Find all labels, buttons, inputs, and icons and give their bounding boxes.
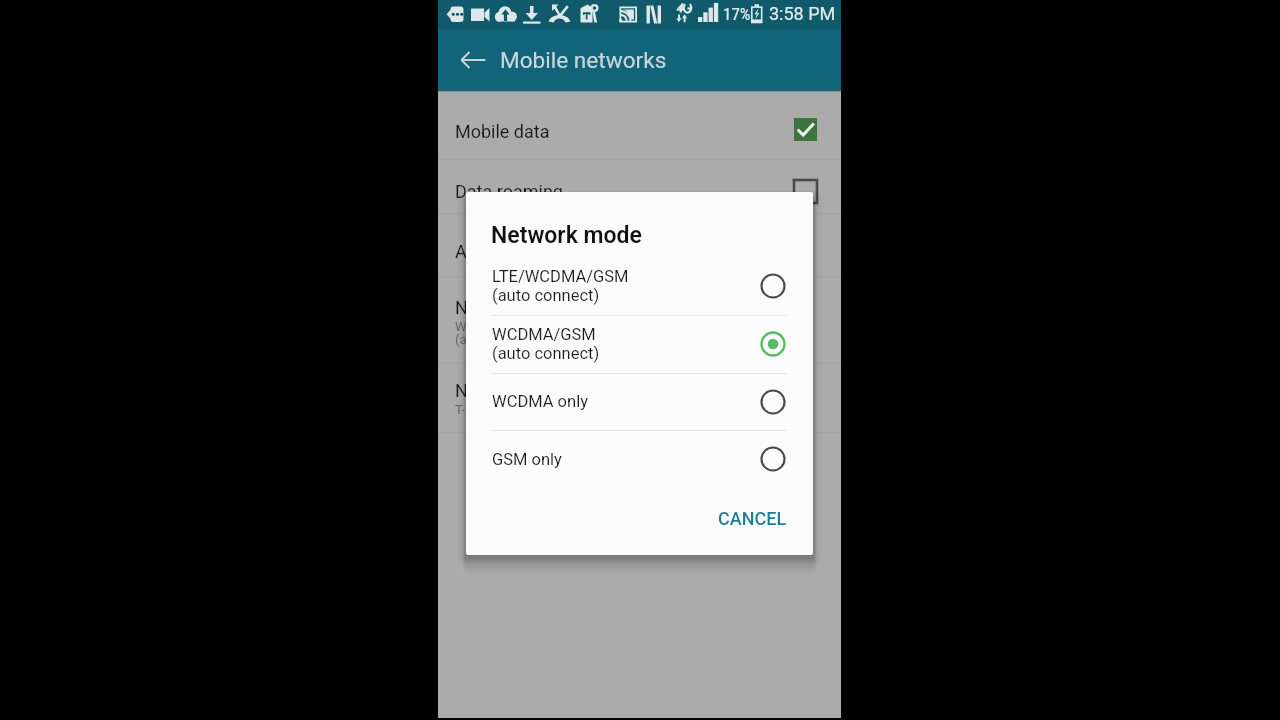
staticText: GSM only [492,450,562,469]
staticText: WCDMA/GSM [492,325,596,344]
staticText: (auto connect) [492,286,600,305]
button[interactable]: Data roaming, off [794,180,817,203]
staticText: (auto connect) [455,332,540,347]
button[interactable]: Network mode [438,277,841,363]
staticText: T-Mobile [455,402,505,417]
staticText: WCDMA only [492,392,588,411]
button[interactable]: LTE/WCDMA/GSM [466,257,813,315]
staticText: WCDMA/GSM [455,319,537,334]
staticText: 17% [723,4,751,24]
button[interactable]: Access Point Names [438,214,841,276]
staticText: 3:58 PM [769,3,836,24]
staticText: Network operators [455,380,604,401]
button[interactable]: WCDMA/GSM [466,315,813,373]
button[interactable]: CANCEL [704,500,801,537]
button[interactable]: Data roaming [438,160,841,213]
staticText: (auto connect) [492,344,600,363]
staticText: LTE/WCDMA/GSM [492,267,629,286]
button[interactable]: Network operators [438,364,841,432]
staticText: Network mode [491,222,642,249]
staticText: Mobile data [455,121,550,142]
button[interactable]: Mobile data [438,91,841,159]
staticText: CANCEL [718,508,787,529]
button[interactable]: GSM only [466,430,813,488]
button[interactable]: WCDMA only [466,373,813,430]
button[interactable]: Back [452,39,494,81]
button[interactable]: Mobile data, on [794,118,817,141]
staticText: Data roaming [455,181,563,202]
staticText: Network mode [455,297,573,318]
staticText: Access Point Names [455,241,622,262]
staticText: Mobile networks [500,47,667,73]
